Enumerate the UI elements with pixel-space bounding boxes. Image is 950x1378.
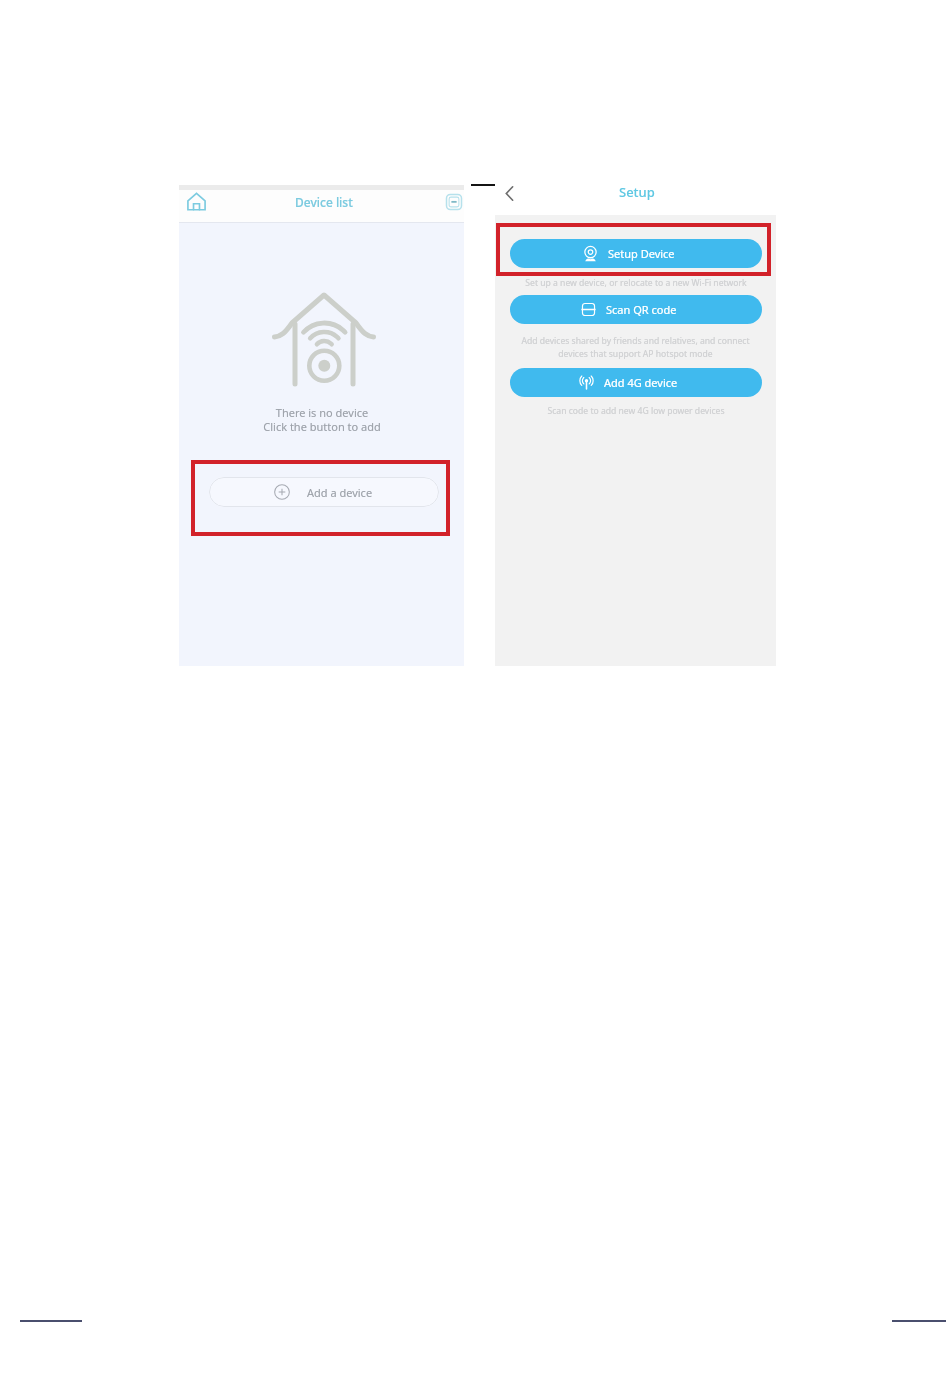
staticText: There is no device Click the button to a… <box>263 405 381 434</box>
staticText: Add a device <box>307 485 373 500</box>
button[interactable]: Scan QR code <box>510 295 762 324</box>
staticText: Setup Device <box>608 246 675 261</box>
button[interactable]: Add 4G device <box>510 368 762 397</box>
button[interactable]: Add a device <box>209 477 439 507</box>
button[interactable]: Home <box>184 189 208 213</box>
staticText: Add devices shared by friends and relati… <box>521 335 750 360</box>
staticText: Set up a new device, or relocate to a ne… <box>525 277 747 289</box>
staticText: Add 4G device <box>604 375 678 390</box>
button[interactable]: Scan QR <box>443 191 465 213</box>
staticText: Device list <box>295 194 353 210</box>
staticText: Setup <box>619 183 655 201</box>
staticText: Scan QR code <box>606 302 677 317</box>
button[interactable]: Setup Device <box>510 239 762 268</box>
staticText: Scan code to add new 4G low power device… <box>547 405 725 417</box>
button[interactable]: Back <box>497 181 521 205</box>
